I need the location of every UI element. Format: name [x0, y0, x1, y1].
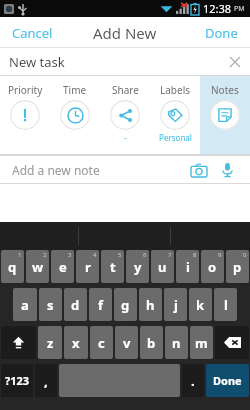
- staticText: Add New: [93, 23, 157, 43]
- staticText: 3: [68, 251, 72, 259]
- staticText: i: [186, 258, 190, 276]
- staticText: m: [195, 334, 208, 352]
- staticText: a: [21, 296, 29, 314]
- staticText: j: [174, 296, 178, 314]
- button[interactable]: Add photo: [186, 157, 212, 183]
- staticText: h: [146, 296, 155, 314]
- staticText: 4: [93, 251, 97, 259]
- button[interactable]: s: [39, 288, 62, 321]
- staticText: Add a new note: [12, 162, 100, 178]
- button[interactable]: Backspace: [215, 326, 249, 359]
- staticText: Personal: [159, 132, 192, 143]
- button[interactable]: w: [26, 250, 49, 283]
- staticText: ,: [44, 372, 48, 390]
- button[interactable]: Voice input: [214, 157, 240, 183]
- staticText: Notes: [211, 83, 239, 97]
- button[interactable]: Time: [50, 76, 100, 154]
- button[interactable]: h: [139, 288, 162, 321]
- staticText: z: [47, 334, 54, 352]
- staticText: f: [98, 296, 104, 314]
- button[interactable]: Cancel: [0, 17, 65, 48]
- staticText: Labels: [160, 83, 191, 97]
- staticText: g: [121, 296, 130, 314]
- staticText: 0: [243, 251, 247, 259]
- button[interactable]: t: [101, 250, 124, 283]
- button[interactable]: Clear text: [220, 48, 250, 76]
- staticText: o: [208, 258, 217, 276]
- button[interactable]: u: [151, 250, 174, 283]
- button[interactable]: f: [89, 288, 112, 321]
- button[interactable]: q: [1, 250, 24, 283]
- button[interactable]: x: [64, 326, 88, 359]
- staticText: 6: [143, 251, 147, 259]
- button[interactable]: i: [176, 250, 199, 283]
- staticText: ?123: [5, 373, 30, 388]
- button[interactable]: Done: [206, 364, 249, 397]
- staticText: d: [71, 296, 80, 314]
- staticText: -: [124, 132, 127, 143]
- button[interactable]: y: [126, 250, 149, 283]
- staticText: 2: [43, 251, 47, 259]
- button[interactable]: .: [182, 364, 204, 397]
- staticText: l: [224, 296, 228, 314]
- staticText: PM: [234, 4, 245, 14]
- button[interactable]: c: [90, 326, 113, 359]
- button[interactable]: Labels: [150, 76, 200, 154]
- button[interactable]: e: [51, 250, 74, 283]
- staticText: Share: [112, 83, 139, 97]
- button[interactable]: Priority: [0, 76, 50, 154]
- button[interactable]: p: [226, 250, 249, 283]
- staticText: Cancel: [12, 24, 53, 42]
- staticText: Done: [205, 24, 238, 42]
- staticText: Priority: [8, 83, 43, 97]
- button[interactable]: a: [13, 288, 37, 321]
- button[interactable]: Notes: [200, 76, 250, 154]
- staticText: 8: [193, 251, 197, 259]
- staticText: r: [85, 258, 91, 276]
- button[interactable]: n: [165, 326, 188, 359]
- staticText: t: [110, 258, 116, 276]
- staticText: p: [233, 258, 242, 276]
- button[interactable]: Done: [193, 17, 250, 48]
- button[interactable]: Shift: [1, 326, 36, 359]
- button[interactable]: b: [140, 326, 163, 359]
- staticText: s: [47, 296, 54, 314]
- staticText: e: [59, 258, 67, 276]
- staticText: w: [32, 258, 44, 276]
- staticText: y: [134, 258, 142, 276]
- button[interactable]: z: [38, 326, 62, 359]
- staticText: .: [191, 372, 195, 390]
- staticText: v: [123, 334, 131, 352]
- staticText: 12:38: [203, 1, 232, 16]
- button[interactable]: ?123: [1, 364, 33, 397]
- button[interactable]: g: [114, 288, 137, 321]
- button[interactable]: d: [64, 288, 87, 321]
- staticText: k: [196, 296, 205, 314]
- button[interactable]: r: [76, 250, 99, 283]
- staticText: c: [98, 334, 105, 352]
- button[interactable]: m: [190, 326, 213, 359]
- button[interactable]: l: [214, 288, 237, 321]
- staticText: 5: [118, 251, 122, 259]
- button[interactable]: j: [164, 288, 187, 321]
- staticText: x: [72, 334, 80, 352]
- staticText: n: [172, 334, 181, 352]
- button[interactable]: o: [201, 250, 224, 283]
- button[interactable]: k: [189, 288, 212, 321]
- staticText: New task: [9, 53, 65, 71]
- button[interactable]: Share: [100, 76, 150, 154]
- button[interactable]: ,: [35, 364, 57, 397]
- staticText: q: [8, 258, 17, 276]
- staticText: Done: [213, 373, 242, 388]
- staticText: 1: [18, 251, 22, 259]
- staticText: 7: [168, 251, 172, 259]
- staticText: 9: [218, 251, 222, 259]
- staticText: Time: [63, 83, 87, 97]
- staticText: u: [158, 258, 167, 276]
- button[interactable]: v: [115, 326, 138, 359]
- staticText: b: [147, 334, 156, 352]
